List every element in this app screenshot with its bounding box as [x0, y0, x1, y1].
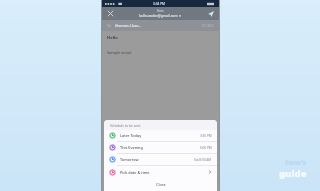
- staticText: This Evening: [120, 145, 143, 150]
- staticText: tom's: [285, 157, 307, 167]
- staticText: guide: [279, 167, 307, 180]
- staticText: Later Today: [120, 133, 142, 138]
- button[interactable]: Pick date & time: [104, 166, 217, 178]
- staticText: thomas.l.bar…: [115, 23, 141, 28]
- button[interactable]: Send: [206, 9, 215, 18]
- staticText: From: [157, 9, 164, 13]
- staticText: 3:34 PM: [153, 2, 166, 6]
- button[interactable]: Tomorrow: [104, 154, 217, 165]
- staticText: Sat 8:00 AM: [194, 158, 212, 162]
- button[interactable]: Close: [104, 178, 217, 191]
- staticText: Close: [156, 182, 166, 187]
- staticText: bullsuesdev@gmail.com ▾: [139, 13, 182, 18]
- staticText: Tomorrow: [120, 157, 139, 162]
- staticText: Schedule to be sent: [110, 123, 141, 127]
- staticText: Sample email.: [107, 50, 133, 55]
- button[interactable]: To: [107, 20, 214, 31]
- staticText: To: [107, 23, 111, 28]
- staticText: Pick date & time: [120, 170, 150, 175]
- button[interactable]: This Evening: [104, 142, 217, 153]
- staticText: CC BCC: [202, 24, 214, 28]
- staticText: 3:30 PM: [200, 134, 212, 138]
- button[interactable]: Close: [106, 9, 115, 18]
- button[interactable]: Later Today: [104, 130, 217, 141]
- staticText: Hello: [107, 35, 118, 41]
- staticText: 6:00 PM: [200, 146, 212, 150]
